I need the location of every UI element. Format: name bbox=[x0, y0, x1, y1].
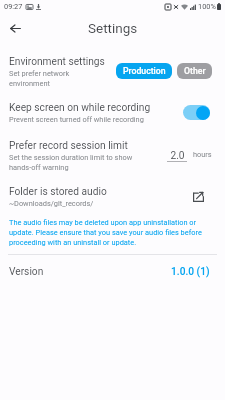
staticText: hours bbox=[193, 150, 212, 159]
staticText: 2.0 bbox=[168, 150, 187, 162]
staticText: Prefer record session limit bbox=[9, 139, 128, 151]
staticText: 09:27 bbox=[4, 2, 23, 11]
staticText: 100% bbox=[198, 2, 216, 11]
staticText: Other bbox=[184, 66, 206, 76]
staticText: Set the session duration limit to show h… bbox=[9, 152, 133, 172]
button[interactable]: Environment settings bbox=[0, 53, 225, 87]
button[interactable]: Keep screen on while recording bbox=[0, 99, 225, 133]
button[interactable]: Folder is stored audio bbox=[0, 183, 225, 217]
button[interactable]: Other bbox=[177, 63, 212, 79]
staticText: Set prefer network environment bbox=[9, 68, 75, 88]
staticText: Prevent screen turned off while recordin… bbox=[9, 114, 144, 124]
button[interactable]: Open folder bbox=[190, 188, 206, 204]
staticText: Keep screen on while recording bbox=[9, 101, 151, 113]
button[interactable]: Prefer record session limit bbox=[0, 137, 225, 171]
button[interactable]: Keep screen on bbox=[183, 105, 210, 120]
staticText: Folder is stored audio bbox=[9, 185, 107, 197]
staticText: Version bbox=[9, 266, 44, 278]
button[interactable]: Back bbox=[4, 17, 26, 39]
button[interactable]: Version bbox=[0, 258, 225, 287]
staticText: 1.0.0 (1) bbox=[171, 266, 210, 278]
button[interactable]: Production bbox=[116, 63, 172, 79]
staticText: Environment settings bbox=[9, 55, 105, 67]
staticText: Production bbox=[123, 66, 166, 76]
staticText: The audio files may be deleted upon app … bbox=[9, 217, 210, 247]
staticText: ~Downloads/glt_records/ bbox=[9, 198, 94, 208]
staticText: Settings bbox=[88, 20, 138, 36]
